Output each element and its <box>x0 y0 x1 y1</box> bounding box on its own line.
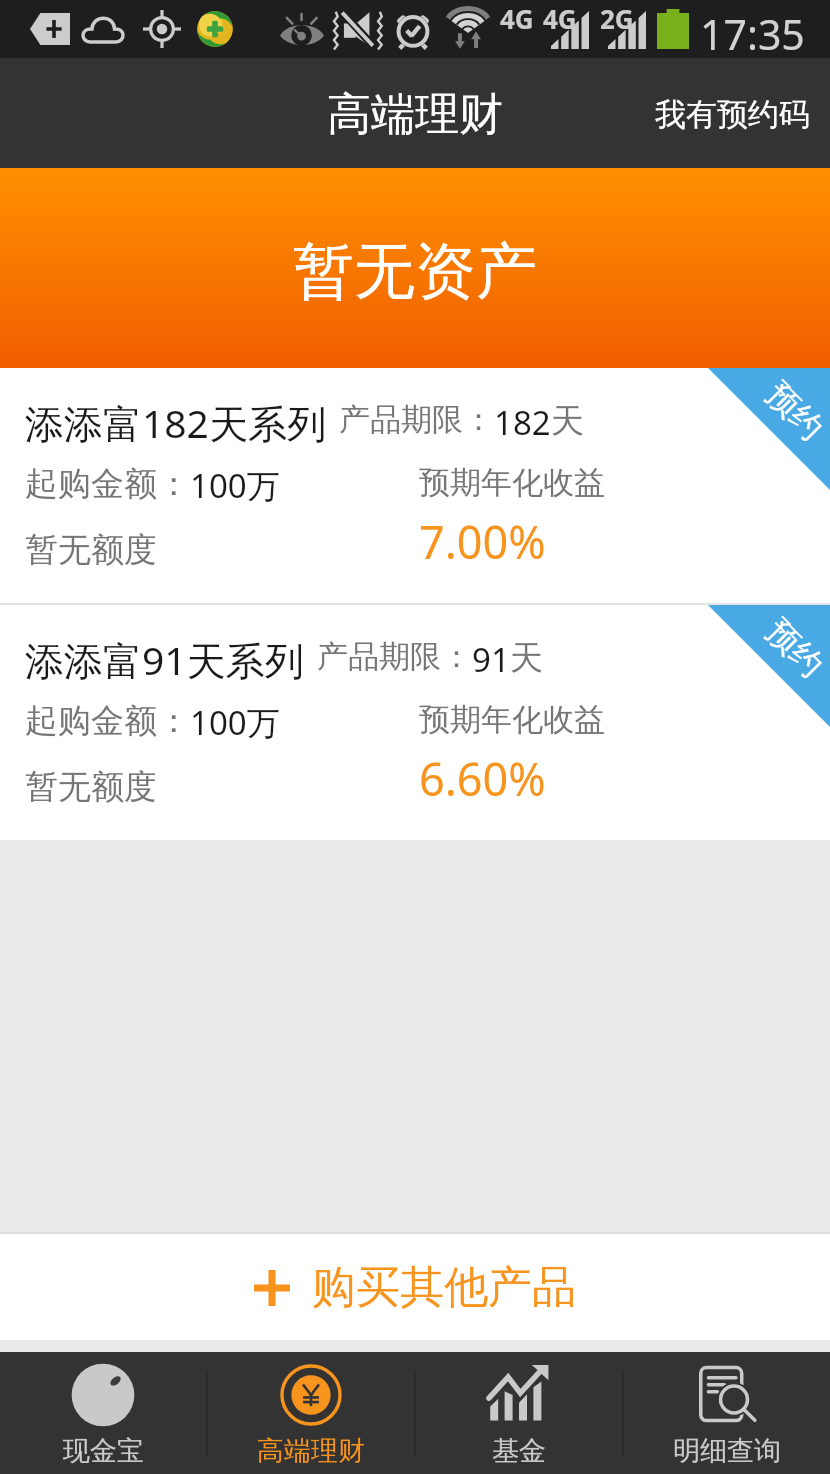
staticText: 100万 <box>190 700 280 745</box>
staticText: 产品期限： <box>339 400 494 439</box>
staticText: 产品期限： <box>317 637 472 676</box>
staticText: 100万 <box>190 463 280 508</box>
staticText: 高端理财 <box>257 1434 365 1468</box>
staticText: 现金宝 <box>63 1434 144 1468</box>
staticText: 明细查询 <box>673 1434 781 1468</box>
staticText: 高端理财 <box>327 87 503 142</box>
staticText: 购买其他产品 <box>312 1260 576 1315</box>
staticText: 添添富182天系列 <box>25 396 326 449</box>
staticText: 暂无资产 <box>293 233 537 310</box>
staticText: 起购金额： <box>25 700 190 742</box>
staticText: 暂无额度 <box>25 529 157 571</box>
staticText: 天 <box>551 400 584 442</box>
staticText: 182 <box>494 400 551 445</box>
staticText: 91 <box>472 637 510 682</box>
other: 预约 Reserve <box>708 368 830 490</box>
staticText: 7.00% <box>419 511 546 572</box>
button[interactable]: 高端理财 <box>208 1352 414 1474</box>
staticText: 预期年化收益 <box>419 700 605 739</box>
staticText: 基金 <box>492 1434 546 1468</box>
button[interactable]: 预约 Reserve <box>0 368 830 603</box>
staticText: 4G <box>543 1 577 36</box>
staticText: 添添富91天系列 <box>25 633 304 686</box>
button[interactable]: 我有预约码 <box>625 68 830 159</box>
staticText: 17:35 <box>700 6 805 62</box>
other: 预约 Reserve <box>708 605 830 727</box>
staticText: 起购金额： <box>25 463 190 505</box>
staticText: 6.60% <box>419 748 546 809</box>
staticText: 2G <box>600 1 634 36</box>
staticText: 天 <box>510 637 543 679</box>
button[interactable]: 现金宝 <box>0 1352 206 1474</box>
staticText: 预约 <box>758 374 830 448</box>
button[interactable]: 明细查询 <box>624 1352 830 1474</box>
staticText: 我有预约码 <box>655 95 810 134</box>
staticText: 预约 <box>758 611 830 685</box>
staticText: 4G <box>500 1 534 36</box>
button[interactable]: 暂无资产 <box>0 168 830 368</box>
staticText: 预期年化收益 <box>419 463 605 502</box>
button[interactable]: 预约 Reserve <box>0 605 830 840</box>
button[interactable]: 基金 <box>416 1352 622 1474</box>
button[interactable]: 购买其他产品 <box>0 1234 830 1340</box>
staticText: 暂无额度 <box>25 766 157 808</box>
